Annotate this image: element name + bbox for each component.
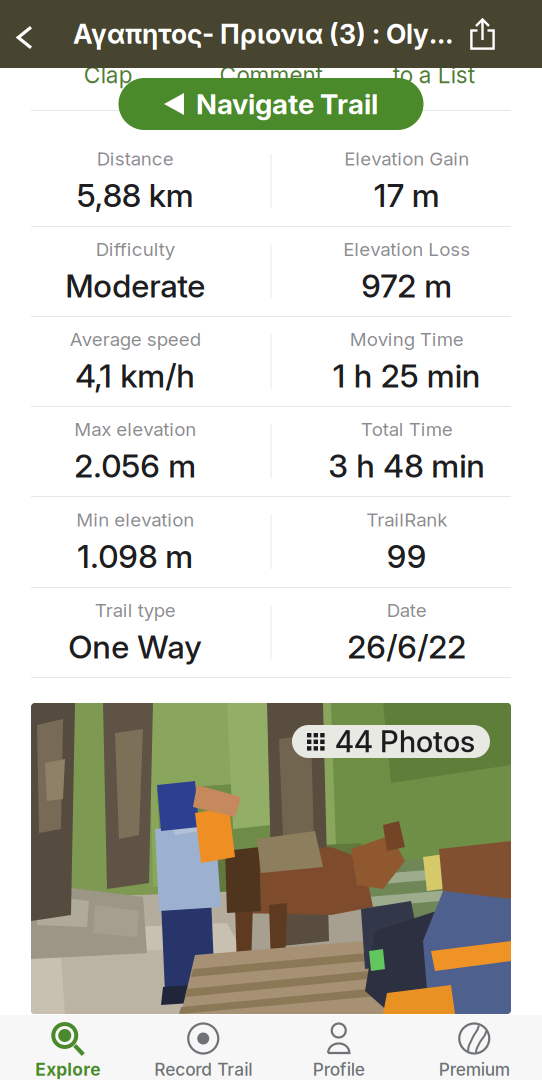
staticText: Explore [35, 1059, 100, 1080]
staticText: Comment [219, 61, 322, 89]
button[interactable]: Back [0, 0, 49, 68]
staticText: Total Time [361, 418, 453, 440]
staticText: Moderate [65, 266, 205, 305]
staticText: Αγαπητος- Πριονια (3) : Olym… [73, 18, 470, 50]
staticText: Elevation Loss [343, 238, 470, 260]
staticText: Difficulty [96, 238, 175, 260]
staticText: Elevation Gain [344, 147, 469, 170]
staticText: 2.056 m [74, 446, 196, 485]
staticText: Max elevation [74, 418, 196, 440]
staticText: Clap [84, 61, 133, 89]
staticText: Profile [313, 1059, 365, 1080]
staticText: 1 h 25 min [333, 356, 481, 395]
staticText: One Way [68, 627, 202, 666]
button[interactable]: to a List [352, 5, 515, 105]
button[interactable]: Premium [406, 1015, 542, 1080]
staticText: 99 [387, 537, 427, 576]
button[interactable]: 44 Photos [292, 725, 490, 758]
button[interactable]: Explore [0, 1015, 135, 1080]
staticText: Trail type [95, 599, 176, 621]
staticText: to a List [393, 61, 475, 89]
staticText: 44 Photos [335, 724, 475, 759]
staticText: 5,88 km [77, 176, 194, 215]
staticText: 1.098 m [77, 537, 193, 576]
staticText: 4,1 km/h [75, 356, 195, 395]
staticText: 3 h 48 min [328, 446, 485, 485]
button[interactable]: Profile [271, 1015, 406, 1080]
staticText: Distance [97, 147, 174, 170]
staticText: Record Trail [154, 1059, 252, 1080]
staticText: Premium [439, 1059, 510, 1080]
staticText: Navigate Trail [196, 87, 378, 121]
staticText: Date [387, 599, 427, 621]
button[interactable]: Navigate Trail [118, 78, 423, 130]
staticText: TrailRank [366, 508, 447, 531]
staticText: 972 m [361, 266, 452, 305]
button[interactable]: Comment [190, 5, 352, 105]
staticText: Moving Time [350, 328, 464, 350]
button[interactable]: Record Trail [135, 1015, 271, 1080]
staticText: Average speed [70, 328, 201, 350]
staticText: 26/6/22 [347, 627, 466, 666]
staticText: 17 m [374, 176, 440, 215]
staticText: Min elevation [76, 508, 194, 531]
button[interactable]: Clap [27, 5, 190, 105]
button[interactable]: Share [470, 0, 542, 68]
